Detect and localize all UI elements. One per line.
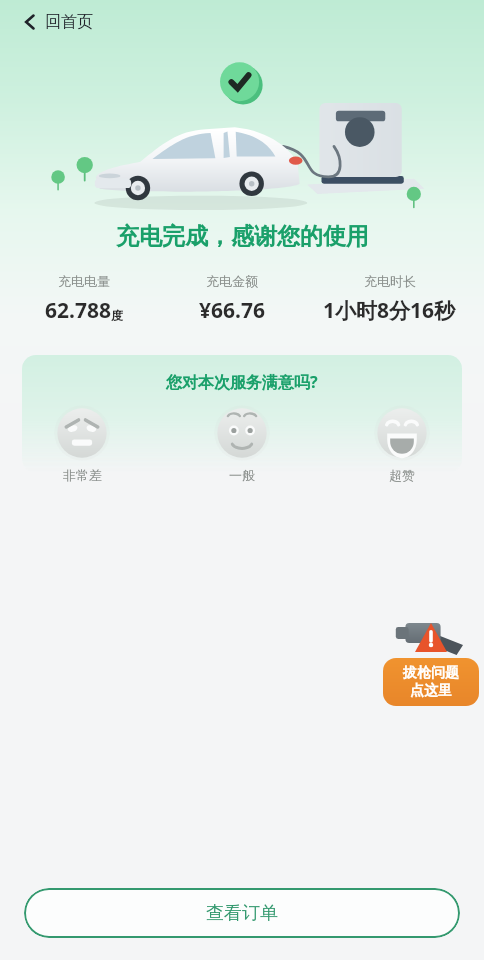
button[interactable]: 拔枪问题点这里 xyxy=(378,612,484,710)
staticText: 拔枪问题 xyxy=(403,664,459,682)
staticText: 充电金额 xyxy=(206,273,258,289)
staticText: 充电电量 xyxy=(58,273,110,289)
staticText: 超赞 xyxy=(389,467,415,483)
button[interactable]: 一般 xyxy=(210,401,274,487)
staticText: 1小时8分16秒 xyxy=(323,296,456,325)
staticText: 回首页 xyxy=(45,12,93,32)
button[interactable]: 超赞 xyxy=(370,401,434,487)
staticText: ¥66.76 xyxy=(199,296,265,325)
staticText: 充电完成，感谢您的使用 xyxy=(116,222,369,251)
button[interactable]: 回首页 xyxy=(14,6,101,38)
button[interactable]: 查看订单 xyxy=(24,888,460,938)
staticText: 62.788 xyxy=(45,296,111,325)
staticText: 非常差 xyxy=(63,467,102,483)
staticText: 充电时长 xyxy=(364,273,416,289)
staticText: 您对本次服务满意吗? xyxy=(166,371,318,393)
staticText: 点这里 xyxy=(410,682,452,700)
staticText: 一般 xyxy=(229,467,255,483)
button[interactable]: 非常差 xyxy=(50,401,114,487)
staticText: 度 xyxy=(111,308,123,323)
staticText: 查看订单 xyxy=(206,902,278,925)
